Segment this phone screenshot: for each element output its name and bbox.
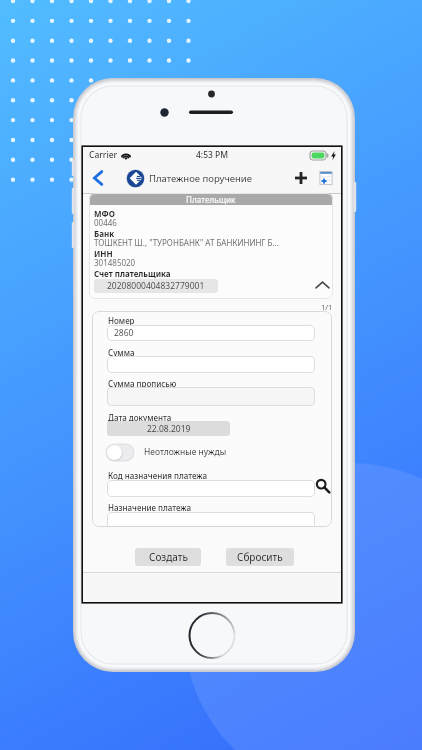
staticText: Назначение платежа: [108, 502, 192, 513]
staticText: Дата документа: [108, 412, 172, 423]
staticText: ИНН: [94, 248, 113, 259]
button[interactable]: [114, 480, 308, 497]
staticText: Банк: [94, 228, 115, 239]
staticText: Счет плательщика: [94, 268, 171, 279]
staticText: 301485020: [94, 257, 136, 268]
staticText: 00446: [94, 217, 117, 228]
staticText: 22.08.2019: [147, 423, 191, 435]
staticText: МФО: [94, 208, 115, 219]
button[interactable]: [114, 356, 308, 373]
button[interactable]: 20208000404832779001: [94, 279, 218, 293]
button[interactable]: Сбросить: [226, 548, 294, 566]
staticText: Код назначения платежа: [108, 470, 207, 481]
staticText: Платежное поручение: [149, 172, 253, 185]
staticText: Сумма прописью: [108, 378, 177, 389]
staticText: Номер: [108, 315, 135, 326]
staticText: Carrier: [89, 149, 118, 161]
staticText: Плательщик: [186, 194, 236, 205]
button[interactable]: [114, 387, 308, 406]
button[interactable]: Collapse payer: [311, 276, 333, 294]
button[interactable]: 2860: [114, 325, 308, 341]
staticText: Неотложные нужды: [144, 446, 227, 458]
button[interactable]: Add: [291, 168, 311, 188]
button[interactable]: [114, 512, 308, 527]
staticText: Сумма: [108, 347, 135, 358]
button[interactable]: New document: [316, 168, 336, 188]
button[interactable]: 22.08.2019: [107, 421, 230, 436]
staticText: 20208000404832779001: [107, 280, 205, 292]
staticText: 1/1: [321, 302, 333, 312]
button[interactable]: Создать: [135, 548, 201, 566]
staticText: Сбросить: [237, 550, 283, 564]
button[interactable]: Back: [87, 165, 109, 191]
button[interactable]: Search: [315, 478, 331, 494]
staticText: ТОШКЕНТ Ш., "ТУРОНБАНК" АТ БАНКИНИНГ Б..…: [94, 237, 279, 248]
button[interactable]: Неотложные нужды: [106, 443, 227, 461]
staticText: Создать: [149, 550, 188, 564]
staticText: 4:53 PM: [196, 149, 229, 161]
staticText: 2860: [114, 327, 134, 339]
